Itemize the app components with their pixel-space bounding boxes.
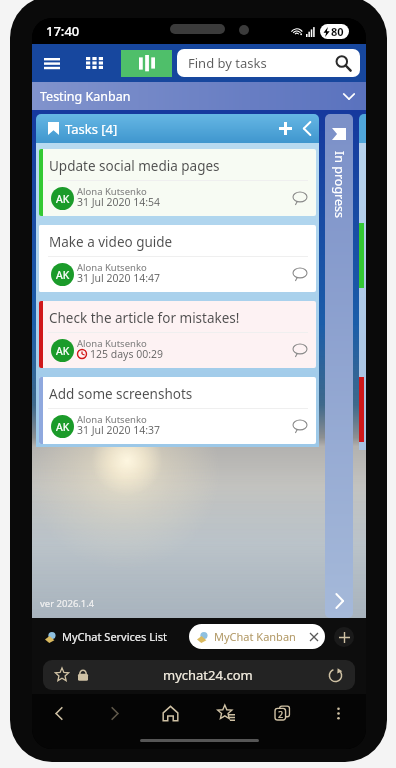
staticText: Alona Kutsenko	[77, 185, 147, 198]
staticText: Check the article for mistakes!	[49, 309, 240, 327]
button[interactable]: Add task	[276, 114, 295, 143]
button[interactable]: Collapse column	[295, 114, 319, 143]
staticText: MyChat Services List	[62, 629, 168, 644]
staticText: AK	[56, 420, 70, 434]
button[interactable]: New tab	[334, 627, 354, 647]
staticText: 80	[331, 24, 344, 39]
button[interactable]: Bookmark	[43, 660, 355, 690]
button[interactable]: Forward	[87, 694, 142, 732]
button[interactable]: MyChat Kanban	[189, 624, 325, 649]
staticText: Find by tasks	[188, 54, 335, 72]
staticText: Update social media pages	[49, 157, 220, 175]
button[interactable]: Add some screenshots	[39, 377, 316, 444]
staticText: Tasks [4]	[65, 120, 118, 138]
staticText: Alona Kutsenko	[77, 413, 147, 426]
button[interactable]: More options	[310, 694, 366, 732]
staticText: 2	[278, 708, 284, 720]
staticText: In progress	[330, 144, 347, 224]
staticText: 31 Jul 2020 14:47	[77, 271, 161, 285]
button[interactable]: Home	[142, 694, 198, 732]
button[interactable]: Check the article for mistakes!	[39, 301, 316, 368]
staticText: 125 days 00:29	[90, 347, 164, 361]
button[interactable]: Tabs	[254, 694, 310, 732]
staticText: AK	[56, 192, 70, 206]
button[interactable]: Make a video guide	[39, 225, 316, 292]
button[interactable]: In progress	[325, 114, 353, 618]
button[interactable]: Apps	[78, 44, 111, 82]
other: Bookmark	[55, 668, 69, 682]
staticText: Make a video guide	[49, 233, 173, 251]
staticText: Testing Kanban	[40, 88, 131, 105]
staticText: MyChat Kanban	[214, 629, 310, 644]
button[interactable]: Menu	[35, 44, 68, 82]
button[interactable]: Update social media pages	[39, 149, 316, 216]
button[interactable]: Back	[32, 694, 87, 732]
staticText: mychat24.com	[163, 666, 253, 684]
staticText: AK	[56, 268, 70, 282]
staticText: Alona Kutsenko	[77, 261, 147, 274]
staticText: Alona Kutsenko	[77, 337, 147, 350]
staticText: ver 2026.1.4	[40, 597, 95, 610]
staticText: AK	[56, 344, 70, 358]
staticText: 17:40	[46, 22, 80, 40]
button[interactable]: Find by tasks	[177, 49, 360, 77]
button[interactable]: Testing Kanban	[32, 82, 366, 110]
button[interactable]: MyChat Services List	[40, 624, 173, 649]
staticText: 31 Jul 2020 14:37	[77, 423, 161, 437]
button[interactable]: Kanban boards	[121, 50, 172, 77]
staticText: 31 Jul 2020 14:54	[77, 195, 161, 209]
other: Reload	[328, 668, 343, 683]
button[interactable]: Bookmarks	[198, 694, 254, 732]
button[interactable]: Tasks [4]	[36, 114, 319, 143]
staticText: Add some screenshots	[49, 385, 193, 403]
